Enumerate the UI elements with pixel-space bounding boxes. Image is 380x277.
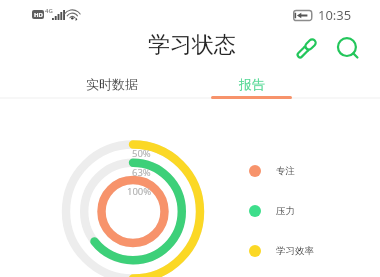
staticText: 10:35 — [318, 6, 352, 24]
staticText: 100% — [127, 185, 152, 198]
button[interactable]: 报告 — [211, 70, 292, 98]
button[interactable]: 专注 — [249, 164, 295, 177]
button[interactable]: Search — [334, 35, 364, 65]
staticText: 专注 — [276, 165, 295, 177]
staticText: 学习状态 — [148, 31, 236, 59]
button[interactable]: 实时数据 — [55, 70, 169, 98]
button[interactable]: 压力 — [249, 204, 295, 217]
button[interactable]: 学习效率 — [249, 244, 314, 257]
staticText: 学习效率 — [276, 245, 314, 257]
staticText: 50% — [132, 147, 151, 160]
staticText: 实时数据 — [86, 76, 138, 92]
staticText: 63% — [132, 166, 151, 179]
staticText: 报告 — [239, 76, 265, 92]
staticText: 压力 — [276, 205, 295, 217]
button[interactable]: Edit — [291, 33, 321, 63]
staticText: 4G — [45, 7, 53, 15]
staticText: HD — [34, 11, 43, 19]
